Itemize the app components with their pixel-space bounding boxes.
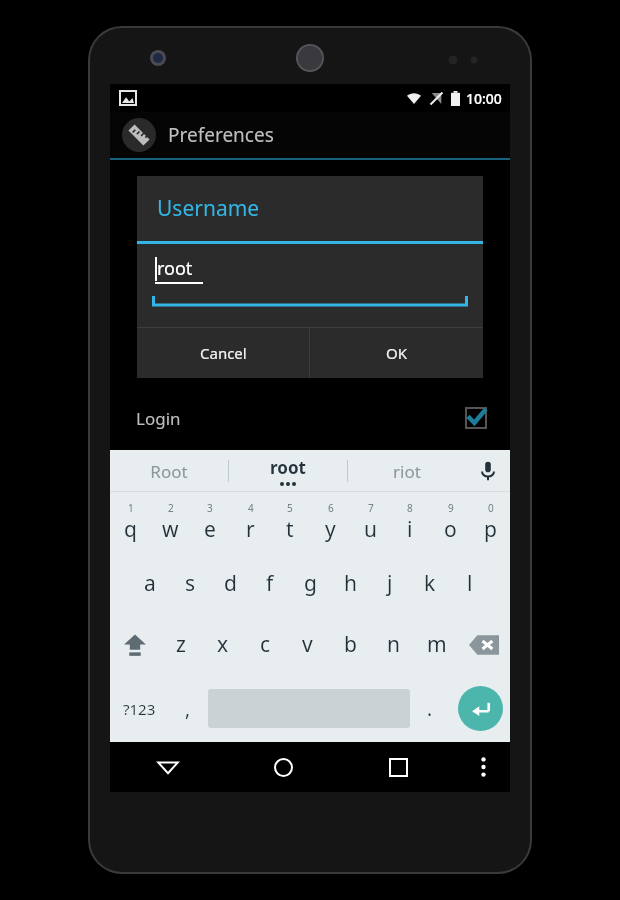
staticText: Preferences bbox=[168, 122, 274, 148]
staticText: 8 bbox=[407, 501, 413, 515]
staticText: 6 bbox=[328, 501, 334, 515]
staticText: Cancel bbox=[200, 343, 247, 363]
staticText: 10:00 bbox=[466, 89, 502, 108]
button[interactable]: x bbox=[202, 614, 244, 675]
staticText: Login bbox=[136, 407, 181, 430]
staticText: y bbox=[325, 515, 336, 544]
button[interactable]: Shift bbox=[110, 614, 160, 675]
staticText: o bbox=[444, 515, 457, 544]
staticText: w bbox=[162, 515, 179, 544]
staticText: Username bbox=[157, 194, 260, 223]
staticText: e bbox=[204, 515, 216, 544]
button[interactable]: App icon bbox=[122, 118, 156, 152]
button[interactable]: Home bbox=[226, 742, 341, 792]
button[interactable]: d bbox=[210, 553, 250, 614]
button[interactable]: 6 bbox=[310, 492, 350, 553]
staticText: i bbox=[407, 515, 413, 544]
button[interactable]: h bbox=[330, 553, 370, 614]
button[interactable]: k bbox=[410, 553, 450, 614]
button[interactable]: l bbox=[450, 553, 490, 614]
button[interactable]: Enter bbox=[458, 686, 503, 731]
staticText: s bbox=[185, 569, 196, 598]
button[interactable]: 0 bbox=[470, 492, 510, 553]
staticText: q bbox=[124, 515, 137, 544]
button[interactable]: . bbox=[410, 675, 450, 742]
staticText: u bbox=[364, 515, 377, 544]
button[interactable]: Voice input bbox=[466, 450, 510, 492]
staticText: root bbox=[270, 456, 306, 479]
staticText: 4 bbox=[248, 501, 254, 515]
button[interactable]: b bbox=[329, 614, 372, 675]
staticText: , bbox=[185, 696, 191, 722]
staticText: 3 bbox=[207, 501, 213, 515]
staticText: Root bbox=[150, 460, 188, 483]
button[interactable]: a bbox=[130, 553, 170, 614]
button[interactable]: c bbox=[244, 614, 286, 675]
staticText: c bbox=[260, 630, 271, 659]
button[interactable]: Cancel bbox=[137, 328, 309, 378]
button[interactable]: Root bbox=[110, 450, 228, 492]
staticText: 7 bbox=[368, 501, 374, 515]
button[interactable]: n bbox=[372, 614, 415, 675]
button[interactable]: s bbox=[170, 553, 210, 614]
button[interactable]: v bbox=[286, 614, 329, 675]
button[interactable]: 5 bbox=[270, 492, 310, 553]
button[interactable]: j bbox=[370, 553, 410, 614]
button[interactable]: z bbox=[160, 614, 202, 675]
staticText: . bbox=[427, 696, 433, 722]
button[interactable]: riot bbox=[348, 450, 466, 492]
button[interactable]: g bbox=[290, 553, 330, 614]
button[interactable]: 8 bbox=[390, 492, 430, 553]
button[interactable]: Recents bbox=[341, 742, 456, 792]
button[interactable]: ?123 bbox=[110, 675, 168, 742]
staticText: 2 bbox=[168, 501, 174, 515]
staticText: root bbox=[157, 256, 193, 281]
button[interactable]: Back bbox=[110, 742, 226, 792]
staticText: t bbox=[286, 515, 294, 544]
staticText: 5 bbox=[287, 501, 293, 515]
button[interactable]: f bbox=[250, 553, 290, 614]
button[interactable]: More options bbox=[456, 742, 510, 792]
button[interactable]: 9 bbox=[430, 492, 470, 553]
button[interactable]: 7 bbox=[350, 492, 390, 553]
staticText: x bbox=[217, 630, 229, 659]
button[interactable]: 1 bbox=[110, 492, 150, 553]
button[interactable]: root bbox=[229, 450, 347, 492]
button[interactable]: Login bbox=[110, 396, 510, 440]
staticText: 1 bbox=[128, 501, 134, 515]
button[interactable]: root bbox=[137, 244, 483, 309]
staticText: v bbox=[302, 630, 313, 659]
staticText: n bbox=[387, 630, 400, 659]
staticText: k bbox=[424, 569, 436, 598]
staticText: l bbox=[467, 569, 473, 598]
button[interactable]: Backspace bbox=[458, 614, 510, 675]
button[interactable]: , bbox=[168, 675, 208, 742]
staticText: d bbox=[224, 569, 237, 598]
staticText: j bbox=[387, 569, 393, 598]
staticText: OK bbox=[386, 343, 408, 363]
staticText: f bbox=[266, 569, 274, 598]
staticText: m bbox=[427, 630, 447, 659]
button[interactable]: m bbox=[415, 614, 458, 675]
staticText: riot bbox=[393, 460, 421, 483]
staticText: a bbox=[144, 569, 156, 598]
staticText: b bbox=[344, 630, 357, 659]
staticText: z bbox=[176, 630, 186, 659]
staticText: 9 bbox=[448, 501, 454, 515]
staticText: r bbox=[246, 515, 255, 544]
button[interactable]: 2 bbox=[150, 492, 190, 553]
button[interactable]: OK bbox=[310, 328, 483, 378]
staticText: g bbox=[304, 569, 317, 598]
staticText: ?123 bbox=[123, 699, 156, 719]
staticText: p bbox=[484, 515, 497, 544]
button[interactable]: 4 bbox=[230, 492, 270, 553]
button[interactable]: 3 bbox=[190, 492, 230, 553]
staticText: h bbox=[344, 569, 357, 598]
staticText: 0 bbox=[488, 501, 494, 515]
